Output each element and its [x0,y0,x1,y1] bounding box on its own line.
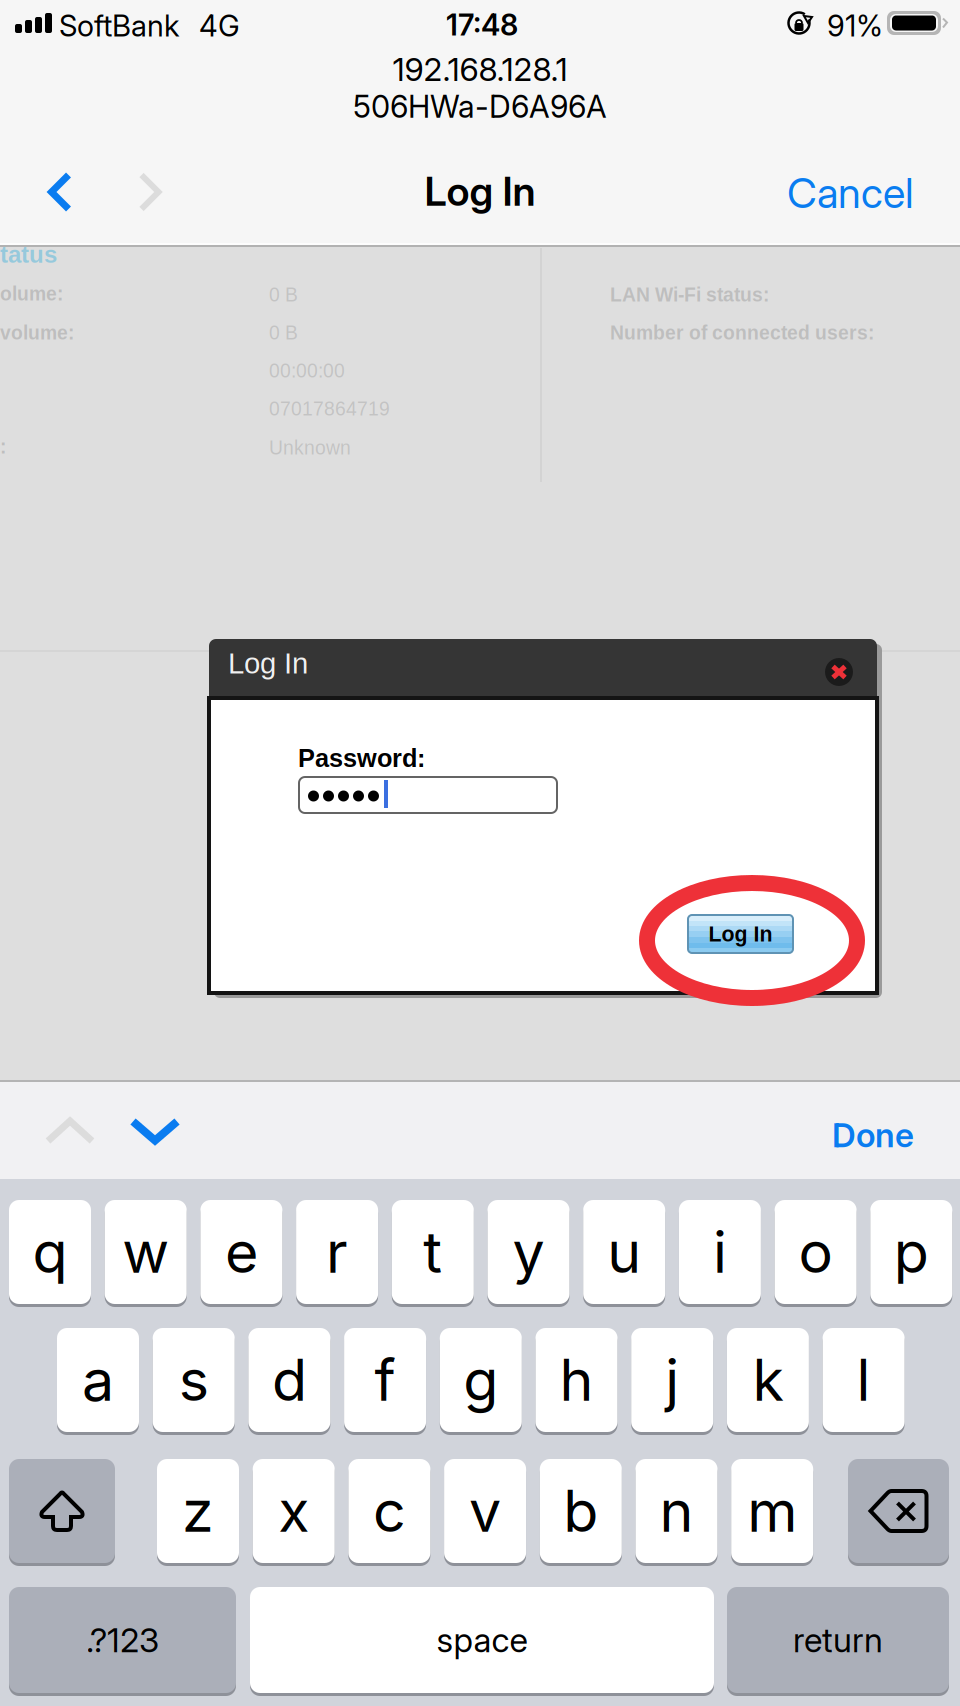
staticText: SoftBank [59,8,180,43]
staticText: LAN Wi-Fi status: [610,284,769,306]
button[interactable]: Log In [688,915,793,953]
staticText: 07017864719 [269,398,390,420]
staticText: 00:00:00 [269,360,345,382]
staticText: : [0,436,6,458]
staticText: i [713,1217,727,1287]
button[interactable]: Previous field [35,1103,105,1159]
staticText: g [463,1345,498,1415]
staticText: y [512,1217,544,1287]
staticText: Done [832,1115,914,1155]
button[interactable]: p [870,1200,952,1307]
button[interactable]: u [583,1200,665,1307]
staticText: 506HWa-D6A96A [353,88,607,125]
button[interactable]: Done [750,1110,914,1160]
button[interactable]: r [296,1200,378,1307]
button[interactable]: f [344,1328,426,1435]
button[interactable]: i [679,1200,761,1307]
button[interactable]: k [727,1328,809,1435]
staticText: q [32,1217,67,1287]
staticText: 91% [827,8,883,43]
button[interactable]: Cancel [690,165,914,221]
button[interactable]: x [253,1459,335,1566]
button[interactable]: a [57,1328,139,1435]
staticText: z [182,1476,214,1546]
button[interactable]: l [823,1328,905,1435]
button[interactable]: Back [29,160,91,224]
button[interactable]: s [153,1328,235,1435]
staticText: v [469,1476,501,1546]
staticText: Unknown [269,437,351,459]
staticText: 0 B [269,322,298,344]
button[interactable]: n [635,1459,717,1566]
staticText: Password: [298,744,425,772]
staticText: d [272,1345,307,1415]
staticText: Log In [228,647,308,680]
button[interactable]: w [105,1200,187,1307]
button[interactable]: t [392,1200,474,1307]
button[interactable]: c [348,1459,430,1566]
button[interactable]: y [487,1200,569,1307]
button[interactable]: Delete [848,1459,949,1566]
staticText: m [747,1476,797,1546]
button[interactable]: z [157,1459,239,1566]
staticText: e [225,1217,258,1287]
staticText: k [752,1345,783,1415]
button[interactable]: d [248,1328,330,1435]
staticText: f [375,1345,396,1415]
button[interactable]: e [200,1200,282,1307]
staticText: a [82,1345,114,1415]
staticText: .?123 [86,1620,159,1660]
button[interactable]: Close [824,657,854,687]
staticText: return [793,1620,883,1660]
staticText: olume: [0,283,63,305]
staticText: x [278,1476,309,1546]
button[interactable]: h [535,1328,617,1435]
button[interactable]: space [250,1587,714,1696]
staticText: space [436,1620,527,1660]
staticText: t [423,1217,442,1287]
staticText: u [607,1217,641,1287]
staticText: 4G [199,8,240,43]
button[interactable]: Forward [119,160,181,224]
staticText: w [122,1217,169,1287]
button[interactable]: return [727,1587,949,1696]
button[interactable]: v [444,1459,526,1566]
staticText: s [179,1345,209,1415]
staticText: n [659,1476,693,1546]
button[interactable]: b [540,1459,622,1566]
button[interactable]: m [731,1459,813,1566]
staticText: p [894,1217,929,1287]
staticText: 192.168.128.1 [392,50,567,89]
staticText: l [857,1345,871,1415]
button[interactable]: Shift [9,1459,115,1566]
staticText: 17:48 [446,7,518,42]
staticText: j [665,1345,679,1415]
staticText: Log In [708,922,772,946]
staticText: volume: [0,322,74,344]
staticText: o [799,1217,833,1287]
staticText: c [373,1476,406,1546]
staticText: Cancel [787,168,914,218]
button[interactable]: q [9,1200,91,1307]
button[interactable]: Next field [120,1103,190,1159]
staticText: tatus [0,241,57,268]
button[interactable]: j [631,1328,713,1435]
staticText: b [563,1476,598,1546]
staticText: r [326,1217,348,1287]
button[interactable]: o [775,1200,857,1307]
button[interactable]: .?123 [9,1587,236,1696]
staticText: 0 B [269,284,298,306]
staticText: h [559,1345,593,1415]
button[interactable]: g [440,1328,522,1435]
staticText: Number of connected users: [610,322,874,344]
staticText: Log In [424,167,535,215]
